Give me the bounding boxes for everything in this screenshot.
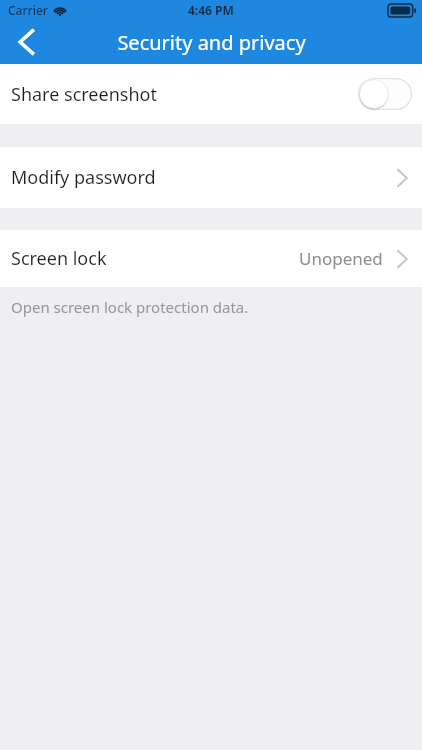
staticText: Modify password xyxy=(11,165,156,190)
staticText: Security and privacy xyxy=(117,29,306,56)
staticText: 4:46 PM xyxy=(188,2,234,18)
staticText: Share screenshot xyxy=(11,82,157,107)
button[interactable]: Modify password xyxy=(0,147,422,208)
button[interactable]: Back xyxy=(0,20,54,64)
button[interactable]: Share screenshot xyxy=(0,64,422,124)
staticText: Carrier xyxy=(8,2,48,18)
button[interactable]: Share screenshot toggle xyxy=(358,78,412,110)
staticText: Screen lock xyxy=(11,246,107,271)
staticText: Unopened xyxy=(299,247,383,270)
button[interactable]: Screen lock xyxy=(0,230,422,287)
staticText: Open screen lock protection data. xyxy=(11,297,249,317)
